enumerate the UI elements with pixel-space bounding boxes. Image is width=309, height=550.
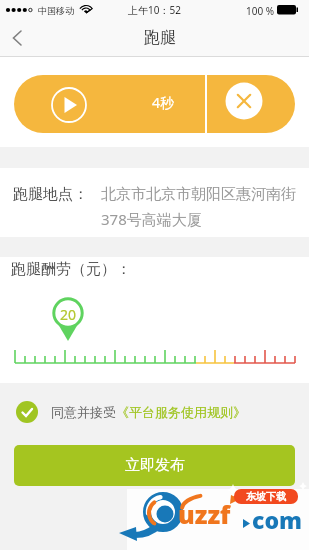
staticText: 同意并接受《平台服务使用规则》 bbox=[51, 404, 246, 420]
button[interactable] bbox=[206, 75, 295, 133]
staticText: 100 % bbox=[246, 4, 275, 18]
button[interactable]: 4秒 bbox=[14, 75, 205, 133]
staticText: com bbox=[252, 504, 303, 535]
staticText: 378号高端大厦 bbox=[101, 209, 202, 229]
staticText: 跑腿地点： bbox=[13, 185, 88, 204]
staticText: 跑腿酬劳（元）： bbox=[11, 260, 131, 279]
staticText: 东坡下载 bbox=[246, 490, 286, 503]
staticText: 20 bbox=[60, 305, 77, 324]
staticText: 上午10：52 bbox=[128, 3, 181, 17]
button[interactable] bbox=[0, 20, 36, 56]
staticText: 中国移动 bbox=[38, 5, 74, 16]
button[interactable]: 同意并接受《平台服务使用规则》 bbox=[16, 401, 246, 423]
staticText: 立即发布 bbox=[125, 456, 185, 475]
staticText: uzzf bbox=[178, 497, 231, 531]
staticText: 4秒 bbox=[152, 93, 175, 112]
staticText: 北京市北京市朝阳区惠河南街 bbox=[101, 185, 296, 204]
staticText: 跑腿 bbox=[144, 28, 176, 48]
button[interactable]: 立即发布 bbox=[14, 445, 295, 486]
